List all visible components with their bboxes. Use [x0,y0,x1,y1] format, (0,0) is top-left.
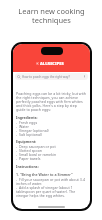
staticText: Equipment: [16,139,37,144]
staticText: - Deep saucepan or pot - Slotted spoon -… [16,144,57,161]
staticText: - Fresh eggs - Water - Vinegar (optional… [16,120,49,137]
staticText: How to poach eggs the right way? [22,75,70,79]
button[interactable]: How to poach eggs the right way? [15,73,88,80]
staticText: 1. "Bring the Water to a Simmer" [16,172,73,177]
staticText: Poaching eggs can be a bit tricky, but w… [16,91,87,112]
staticText: Ingredients: [16,115,38,120]
staticText: - Fill your saucepan or pot with about 3… [16,177,87,198]
staticText: ALLRECIPES [40,61,64,66]
other: Voice search [83,75,86,78]
staticText: Learn new cooking techniques [18,6,85,26]
staticText: Instructions: [16,164,39,169]
